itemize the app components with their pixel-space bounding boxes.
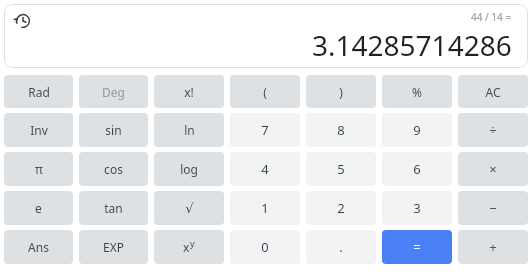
staticText: Ans bbox=[28, 239, 49, 255]
staticText: Deg bbox=[102, 84, 125, 100]
staticText: . bbox=[339, 238, 343, 256]
staticText: tan bbox=[104, 200, 123, 216]
staticText: 0 bbox=[261, 238, 269, 256]
button[interactable]: − bbox=[458, 191, 528, 225]
button[interactable]: log bbox=[154, 152, 224, 186]
staticText: 3.14285714286 bbox=[312, 26, 512, 64]
button[interactable]: 9 bbox=[382, 113, 452, 147]
staticText: ( bbox=[263, 84, 267, 100]
staticText: + bbox=[489, 238, 497, 256]
staticText: % bbox=[412, 84, 422, 100]
staticText: 7 bbox=[261, 121, 269, 139]
button[interactable]: √ bbox=[154, 191, 224, 225]
button[interactable]: ÷ bbox=[458, 113, 528, 147]
button[interactable]: AC bbox=[458, 75, 528, 108]
staticText: ) bbox=[339, 84, 343, 100]
staticText: − bbox=[489, 199, 497, 217]
staticText: ln bbox=[184, 122, 195, 138]
staticText: 8 bbox=[337, 121, 345, 139]
staticText: × bbox=[489, 160, 497, 178]
staticText: Rad bbox=[28, 84, 50, 100]
button[interactable]: 1 bbox=[230, 191, 300, 225]
button[interactable]: 6 bbox=[382, 152, 452, 186]
staticText: 2 bbox=[337, 199, 345, 217]
button[interactable]: 0 bbox=[230, 230, 300, 264]
button[interactable]: x bbox=[154, 230, 224, 264]
staticText: 3 bbox=[413, 199, 421, 217]
button[interactable]: 7 bbox=[230, 113, 300, 147]
button[interactable]: 2 bbox=[306, 191, 376, 225]
staticText: Inv bbox=[30, 122, 48, 138]
staticText: π bbox=[35, 161, 43, 177]
staticText: 5 bbox=[337, 160, 345, 178]
staticText: 6 bbox=[413, 160, 421, 178]
staticText: 4 bbox=[261, 160, 269, 178]
staticText: e bbox=[35, 200, 42, 216]
button[interactable]: 3 bbox=[382, 191, 452, 225]
button[interactable]: ln bbox=[154, 113, 224, 147]
button[interactable]: e bbox=[4, 191, 73, 225]
button[interactable]: 4 bbox=[230, 152, 300, 186]
staticText: cos bbox=[104, 161, 123, 177]
button[interactable]: tan bbox=[79, 191, 148, 225]
button[interactable]: = bbox=[382, 230, 452, 264]
button[interactable]: ( bbox=[230, 75, 300, 108]
staticText: 1 bbox=[261, 199, 269, 217]
staticText: 9 bbox=[413, 121, 421, 139]
button[interactable]: π bbox=[4, 152, 73, 186]
button[interactable]: Deg bbox=[79, 75, 148, 108]
button[interactable]: EXP bbox=[79, 230, 148, 264]
staticText: y bbox=[190, 237, 195, 249]
button[interactable]: cos bbox=[79, 152, 148, 186]
staticText: sin bbox=[105, 122, 122, 138]
button[interactable]: Rad bbox=[4, 75, 73, 108]
staticText: 44 / 14 = bbox=[471, 10, 512, 24]
staticText: x bbox=[183, 239, 190, 255]
button[interactable]: % bbox=[382, 75, 452, 108]
staticText: AC bbox=[485, 84, 501, 100]
button[interactable]: ) bbox=[306, 75, 376, 108]
button[interactable]: sin bbox=[79, 113, 148, 147]
button[interactable]: . bbox=[306, 230, 376, 264]
button[interactable]: × bbox=[458, 152, 528, 186]
button[interactable]: Ans bbox=[4, 230, 73, 264]
staticText: EXP bbox=[103, 239, 124, 255]
staticText: = bbox=[413, 238, 421, 256]
button[interactable]: Inv bbox=[4, 113, 73, 147]
staticText: x! bbox=[184, 84, 194, 100]
button[interactable]: 8 bbox=[306, 113, 376, 147]
button[interactable]: History bbox=[8, 6, 38, 36]
button[interactable]: x! bbox=[154, 75, 224, 108]
staticText: √ bbox=[185, 201, 194, 216]
staticText: ÷ bbox=[489, 121, 497, 139]
button[interactable]: + bbox=[458, 230, 528, 264]
button[interactable]: 5 bbox=[306, 152, 376, 186]
staticText: log bbox=[180, 161, 198, 177]
